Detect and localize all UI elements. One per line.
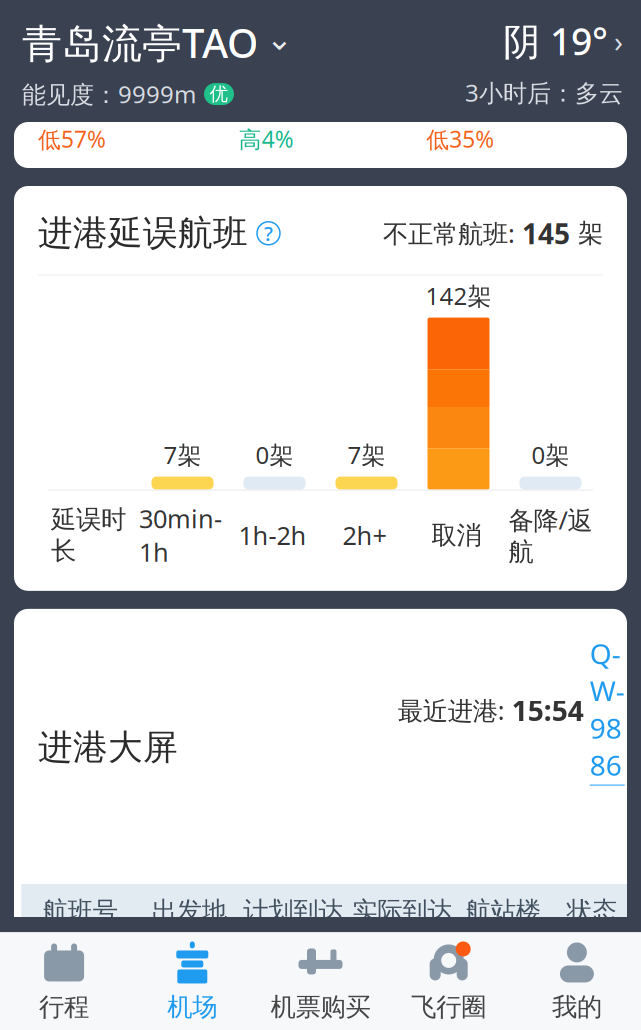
staticText: 出发地 — [152, 895, 227, 926]
staticText: QW9886 — [590, 635, 625, 784]
staticText: 行程 — [39, 991, 89, 1022]
staticText: 航班号 — [43, 895, 118, 926]
staticText: 145 — [522, 215, 570, 252]
staticText: 0架 — [531, 439, 569, 471]
staticText: 计划到达 — [243, 895, 343, 926]
staticText: 0架 — [255, 439, 293, 471]
staticText: 2h+ — [342, 518, 386, 552]
staticText: 低35% — [426, 124, 494, 154]
staticText: 进港大屏 — [38, 726, 178, 769]
staticText: 进港延误航班 — [38, 212, 248, 255]
button[interactable]: CZ3632 — [21, 938, 634, 999]
staticText: 机场 — [167, 991, 217, 1022]
staticText: ⌄ — [266, 20, 293, 57]
staticText: 15:54 — [512, 692, 584, 729]
staticText: 机票购买 — [270, 991, 370, 1022]
staticText: 架 — [570, 218, 603, 249]
staticText: 16:05 — [250, 949, 326, 988]
staticText: 预 — [427, 1011, 443, 1030]
staticText: 高4% — [239, 124, 294, 154]
button[interactable]: 我的 — [513, 933, 641, 1030]
staticText: 不正常航班: — [383, 216, 522, 250]
staticText: 142架 — [425, 280, 491, 312]
staticText: 哈尔滨 — [141, 950, 228, 986]
staticText: 我的 — [552, 991, 602, 1022]
button[interactable]: OZ6705 — [21, 999, 634, 1030]
staticText: 青岛流亭TAO — [22, 16, 258, 69]
staticText: 取消 — [431, 520, 481, 551]
staticText: 30min-1h — [139, 502, 222, 569]
staticText: 延误时长 — [51, 504, 126, 566]
button[interactable]: 阴 19° — [465, 16, 623, 108]
staticText: 15:47 — [359, 949, 435, 988]
staticText: 3小时后：多云 — [465, 77, 623, 108]
staticText: 备降/返航 — [508, 503, 592, 568]
staticText: T2 — [482, 1010, 515, 1030]
staticText: 1h-2h — [238, 518, 306, 552]
staticText: 状态 — [567, 895, 617, 926]
staticText: 最近进港: — [398, 693, 512, 727]
staticText: 17:27 — [351, 1010, 427, 1030]
staticText: 到达 — [563, 950, 621, 986]
staticText: 取消 — [563, 1011, 621, 1030]
staticText: 7架 — [163, 439, 201, 471]
staticText: OZ6705 — [21, 1010, 129, 1030]
staticText: 7架 — [347, 439, 385, 471]
button[interactable]: 机场 — [128, 933, 256, 1030]
staticText: 航站楼 — [466, 895, 541, 926]
button[interactable]: 机票购买 — [256, 933, 385, 1030]
staticText: 首尔 — [155, 1011, 213, 1030]
staticText: 16:10 — [250, 1010, 326, 1030]
staticText: 飞行圈 — [411, 991, 486, 1022]
staticText: › — [614, 21, 623, 60]
button[interactable]: 帮助说明 — [248, 222, 280, 245]
staticText: 优 — [209, 83, 228, 105]
staticText: 阴 19° — [503, 16, 608, 66]
button[interactable]: QW9886 — [584, 635, 625, 786]
staticText: 低57% — [38, 124, 106, 154]
staticText: 能见度：9999m — [22, 78, 196, 110]
staticText: 实际到达 — [352, 895, 452, 926]
button[interactable]: 飞行圈 — [385, 933, 513, 1030]
button[interactable]: 行程 — [0, 933, 128, 1030]
button[interactable]: 青岛流亭TAO — [22, 16, 293, 110]
staticText: ? — [264, 220, 273, 247]
staticText: CZ3632 — [23, 949, 127, 988]
